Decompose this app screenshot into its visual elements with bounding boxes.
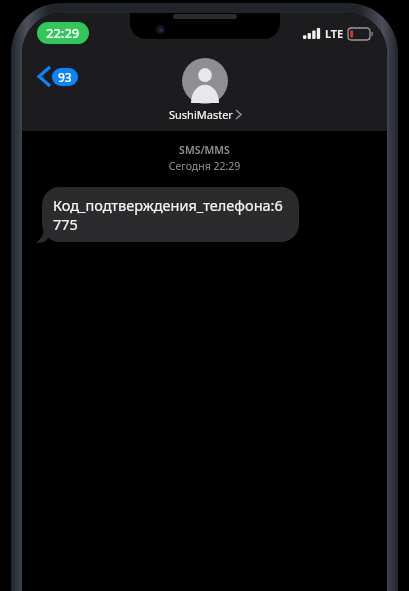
button[interactable]: Back, 93 unread	[35, 63, 82, 90]
staticText: 93	[58, 69, 72, 85]
button[interactable]: SushiMaster	[159, 53, 251, 122]
staticText: LTE	[325, 26, 344, 41]
staticText: SushiMaster	[169, 107, 233, 122]
staticText: SMS/MMS	[22, 143, 387, 157]
staticText: 22:29	[46, 24, 80, 42]
staticText: Сегодня 22:29	[22, 159, 387, 173]
button[interactable]: Код_подтверждения_телефона:6775	[42, 187, 299, 242]
staticText: Код_подтверждения_телефона:6775	[53, 195, 288, 234]
